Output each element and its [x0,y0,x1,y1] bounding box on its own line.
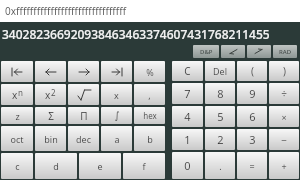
staticText: bin [44,133,58,145]
other: right [75,63,93,81]
button[interactable]: hex [134,107,165,124]
button[interactable]: Σ [35,107,66,124]
button[interactable]: x [101,84,132,105]
staticText: + [281,160,287,172]
staticText: 340282366920938463463374607431768211455 [2,26,270,42]
button[interactable]: bin [35,126,66,151]
button[interactable]: endRight [101,61,132,82]
staticText: 9 [249,86,256,101]
other: endRight [108,63,126,81]
staticText: 3 [249,132,256,147]
button[interactable]: + [269,152,299,179]
button[interactable]: z [1,107,33,124]
button[interactable]: . [205,152,235,179]
button[interactable]: ÷ [269,83,299,104]
staticText: . [219,160,222,172]
staticText: Π [80,109,88,123]
button[interactable]: Redo [247,45,271,58]
button[interactable]: e [79,153,121,179]
staticText: 5 [217,109,224,124]
staticText: 0 [184,158,191,173]
other: Undo [226,45,240,58]
staticText: = [249,160,255,172]
staticText: 0xffffffffffffffffffffffffffffffff [5,4,127,18]
button[interactable]: x [1,84,33,105]
staticText: ( [251,64,254,78]
button[interactable]: right [68,61,99,82]
other: left [42,63,60,81]
other: Redo [252,45,266,58]
button[interactable]: d [35,153,77,179]
staticText: 2 [217,132,224,147]
staticText: 6 [249,109,256,124]
staticText: oct [10,133,24,145]
button[interactable]: x [35,84,66,105]
other: homeLeft [8,63,26,81]
staticText: % [146,66,154,78]
button[interactable]: Π [68,107,99,124]
staticText: RAD [279,48,292,56]
button[interactable]: , [134,84,165,105]
staticText: d [53,160,59,172]
button[interactable]: 7 [172,83,203,104]
button[interactable]: 0 [172,152,203,179]
staticText: Σ [48,109,54,123]
staticText: a [114,133,120,145]
button[interactable]: × [269,106,299,127]
button[interactable]: ) [269,61,299,81]
button[interactable]: Del [205,61,235,81]
staticText: 4 [184,109,191,124]
staticText: c [15,160,20,172]
button[interactable]: C [172,61,203,81]
staticText: dec [76,133,91,145]
other: sqrt [75,86,93,104]
button[interactable]: % [134,61,165,82]
button[interactable]: f [123,153,165,179]
staticText: 8 [217,86,224,101]
staticText: hex [143,110,157,121]
staticText: ÷ [281,87,287,101]
button[interactable]: 3 [237,129,267,150]
button[interactable]: 1 [172,129,203,150]
staticText: D&P [200,48,213,56]
button[interactable]: − [269,129,299,150]
button[interactable]: 9 [237,83,267,104]
button[interactable]: left [35,61,66,82]
staticText: 1 [184,132,191,147]
button[interactable]: 2 [205,129,235,150]
staticText: ∫ [114,110,120,122]
staticText: n [18,87,23,98]
staticText: b [147,133,153,145]
button[interactable]: oct [1,126,33,151]
button[interactable]: Undo [221,45,245,58]
button[interactable]: D&P [193,45,219,58]
staticText: ) [283,64,286,78]
button[interactable]: 5 [205,106,235,127]
staticText: C [184,64,191,78]
button[interactable]: dec [68,126,99,151]
staticText: × [281,111,287,123]
button[interactable]: 6 [237,106,267,127]
button[interactable]: 4 [172,106,203,127]
staticText: x [12,88,18,102]
button[interactable]: c [1,153,33,179]
staticText: x [114,89,119,101]
staticText: 2 [51,87,56,98]
button[interactable]: 8 [205,83,235,104]
staticText: 7 [184,86,191,101]
staticText: x [45,88,51,102]
staticText: , [148,89,151,101]
button[interactable]: ∫ [101,107,132,124]
staticText: − [281,133,287,147]
staticText: Del [213,65,227,77]
button[interactable]: b [134,126,165,151]
staticText: e [97,160,103,172]
button[interactable]: homeLeft [1,61,33,82]
button[interactable]: a [101,126,132,151]
button[interactable]: = [237,152,267,179]
button[interactable]: ( [237,61,267,81]
button[interactable]: RAD [273,45,297,58]
staticText: f [142,160,146,172]
button[interactable]: sqrt [68,84,99,105]
staticText: z [15,110,20,122]
